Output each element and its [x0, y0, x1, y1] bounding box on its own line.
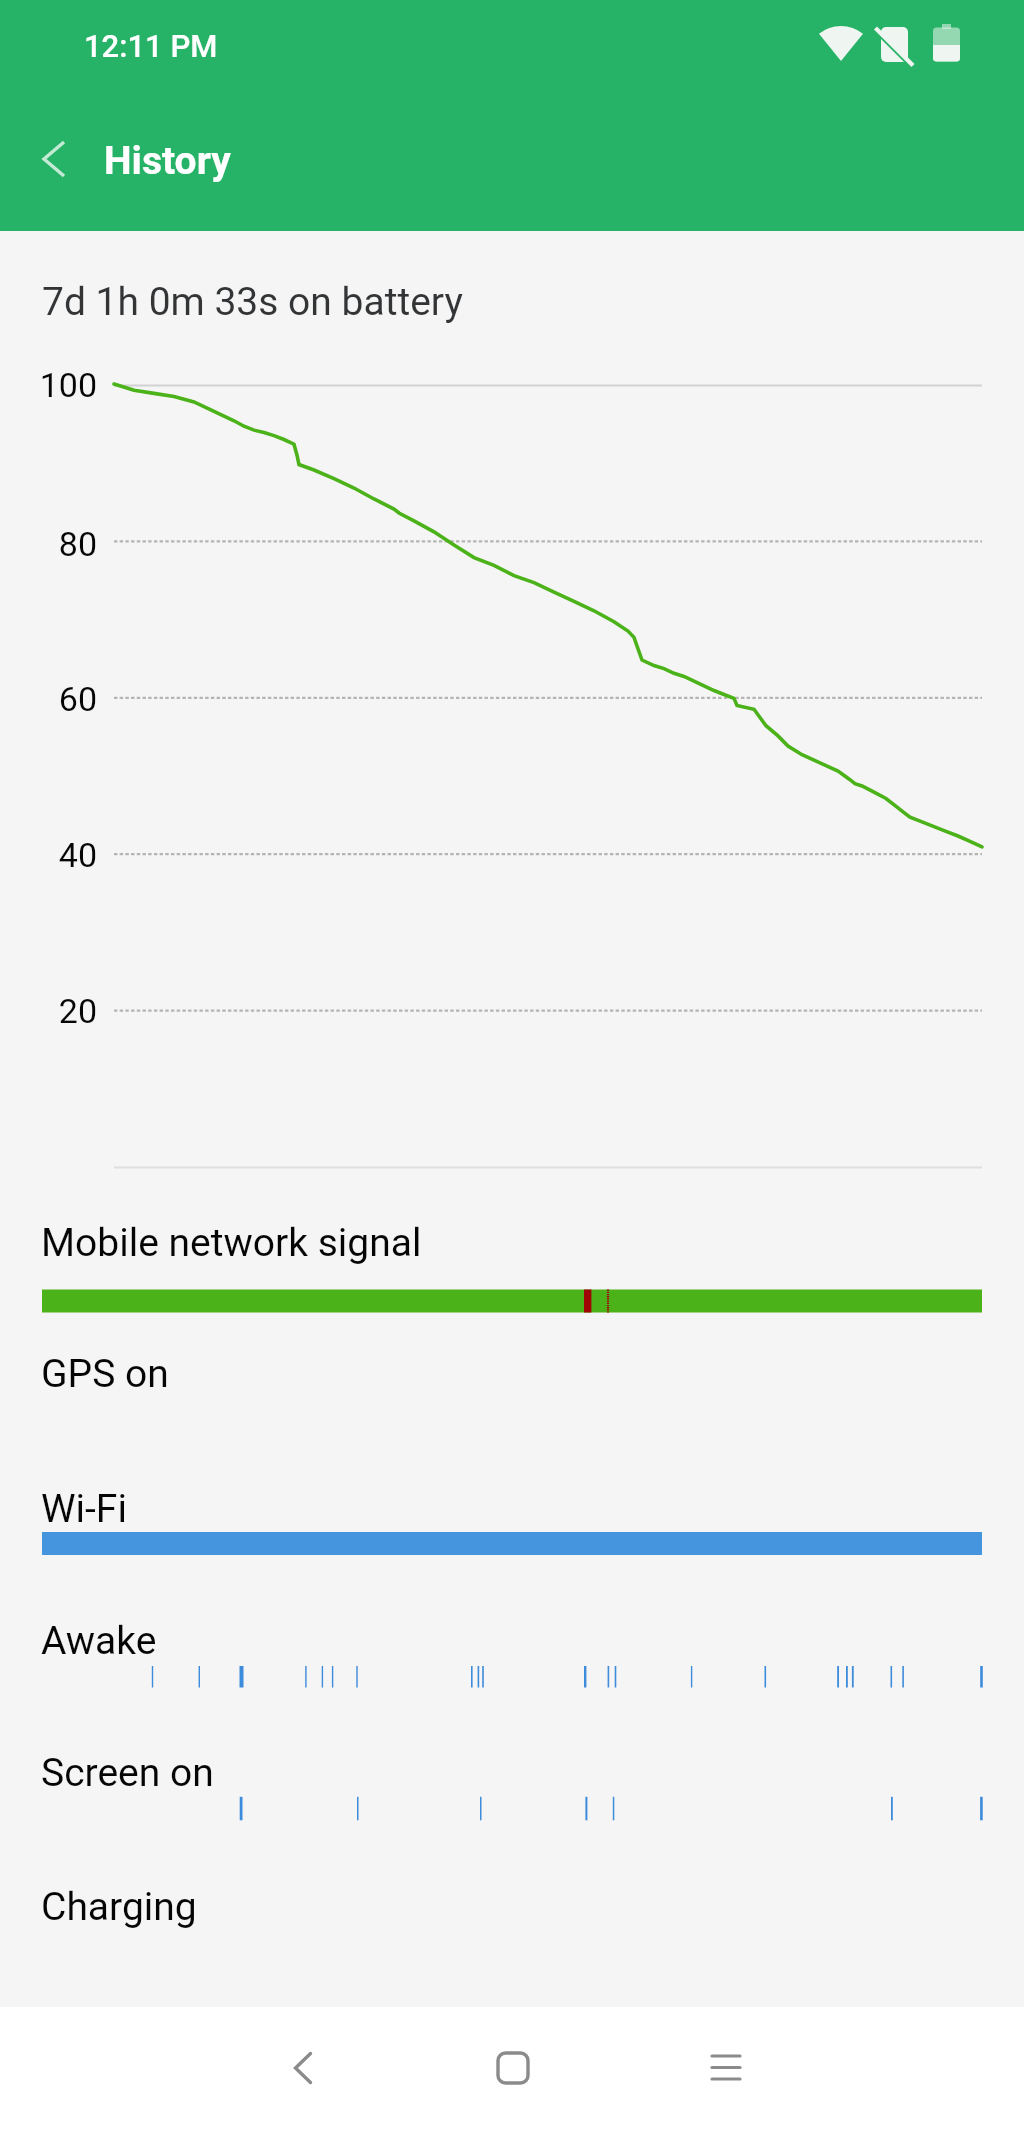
staticText: 40 — [19, 835, 97, 875]
staticText: GPS on — [41, 1351, 169, 1397]
staticText: 100 — [19, 365, 97, 405]
button[interactable]: Back — [241, 2020, 365, 2116]
staticText: Wi-Fi — [41, 1486, 127, 1532]
staticText: 7d 1h 0m 33s on battery — [42, 279, 463, 325]
button[interactable]: Recent apps — [664, 2020, 788, 2116]
button[interactable]: Back — [20, 125, 88, 193]
staticText: Charging — [41, 1884, 197, 1930]
staticText: 80 — [19, 524, 97, 564]
staticText: 60 — [19, 679, 97, 719]
staticText: History — [104, 138, 231, 184]
button[interactable]: Home — [451, 2020, 575, 2116]
staticText: Screen on — [41, 1750, 214, 1796]
staticText: 12:11 PM — [84, 28, 218, 64]
staticText: Awake — [41, 1618, 157, 1664]
staticText: 20 — [19, 991, 97, 1031]
staticText: Mobile network signal — [41, 1220, 422, 1266]
